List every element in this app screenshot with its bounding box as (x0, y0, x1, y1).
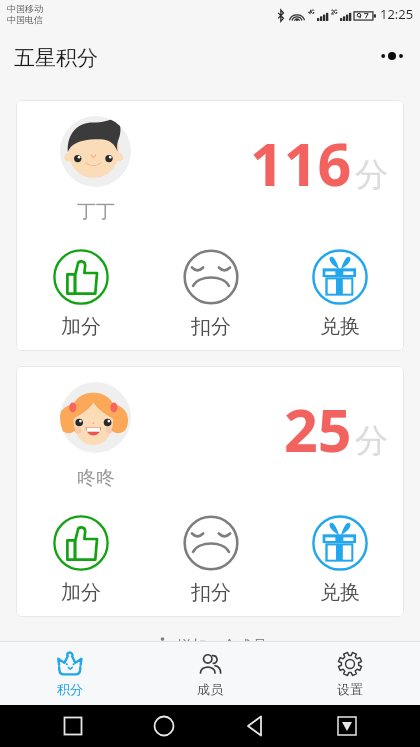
staticText: 分 (355, 420, 388, 462)
button[interactable]: Add points (16, 249, 146, 339)
staticText: 兑换 (320, 580, 360, 605)
button[interactable]: 丁丁 (16, 100, 404, 351)
button[interactable]: Redeem (275, 515, 404, 605)
staticText: 成员 (197, 681, 223, 697)
staticText: 积分 (57, 681, 83, 697)
button[interactable]: More options (368, 32, 416, 80)
staticText: 116 (250, 123, 352, 203)
button[interactable]: Deduct points (146, 249, 275, 339)
staticText: 中国电信 (7, 14, 43, 25)
button[interactable]: 成员 (140, 642, 280, 705)
staticText: 中国移动 (7, 3, 43, 14)
staticText: 咚咚 (77, 466, 115, 490)
button[interactable]: 咚咚 (16, 366, 404, 617)
staticText: 加分 (61, 580, 101, 605)
button[interactable]: Recents (54, 707, 92, 745)
staticText: 扣分 (191, 314, 231, 339)
button[interactable]: Redeem (275, 249, 404, 339)
staticText: 增加一个成员 (177, 637, 267, 641)
staticText: 25 (284, 389, 352, 469)
button[interactable]: Home (145, 707, 183, 745)
button[interactable]: 增加一个成员 (0, 632, 420, 641)
staticText: 兑换 (320, 314, 360, 339)
button[interactable]: Deduct points (146, 515, 275, 605)
staticText: 扣分 (191, 580, 231, 605)
button[interactable]: Back (237, 707, 275, 745)
staticText: 五星积分 (14, 45, 98, 71)
staticText: 丁丁 (77, 200, 115, 224)
button[interactable]: 积分 (0, 642, 140, 705)
button[interactable]: Hide keyboard (328, 707, 366, 745)
staticText: 设置 (337, 681, 363, 697)
staticText: 分 (355, 154, 388, 196)
staticText: 12:25 (380, 5, 414, 23)
button[interactable]: Add points (16, 515, 146, 605)
staticText: 加分 (61, 314, 101, 339)
button[interactable]: 设置 (280, 642, 420, 705)
